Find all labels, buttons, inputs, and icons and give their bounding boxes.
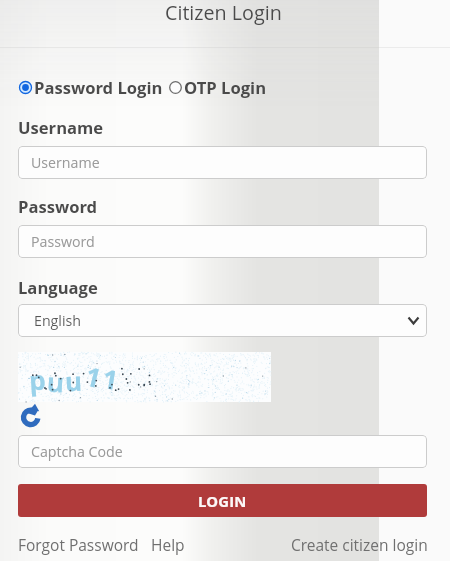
button[interactable]: Forgot Password	[18, 534, 139, 555]
staticText: LOGIN	[198, 491, 247, 511]
staticText: 1	[82, 358, 105, 395]
button[interactable]: English	[18, 304, 427, 337]
staticText: English	[34, 311, 82, 330]
button[interactable]: Captcha Code	[18, 435, 427, 468]
button[interactable]	[169, 81, 182, 94]
staticText: Language	[18, 276, 98, 299]
button[interactable]: LOGIN	[18, 484, 427, 517]
button[interactable]	[19, 81, 32, 94]
button[interactable]: Help	[151, 534, 185, 555]
button[interactable]: Username	[18, 146, 427, 179]
staticText: Citizen Login	[165, 0, 282, 26]
staticText: Captcha Code	[31, 442, 123, 461]
staticText: u	[46, 364, 66, 399]
staticText: Password	[31, 232, 95, 251]
staticText: Username	[31, 153, 100, 172]
staticText: u	[64, 363, 84, 398]
staticText: 1	[100, 360, 121, 397]
staticText: p	[28, 361, 47, 397]
button[interactable]: Refresh captcha	[20, 403, 44, 429]
staticText: Username	[18, 116, 104, 139]
button[interactable]: Password	[18, 225, 427, 258]
staticText: Password	[18, 195, 98, 218]
button[interactable]: Create citizen login	[291, 534, 428, 555]
